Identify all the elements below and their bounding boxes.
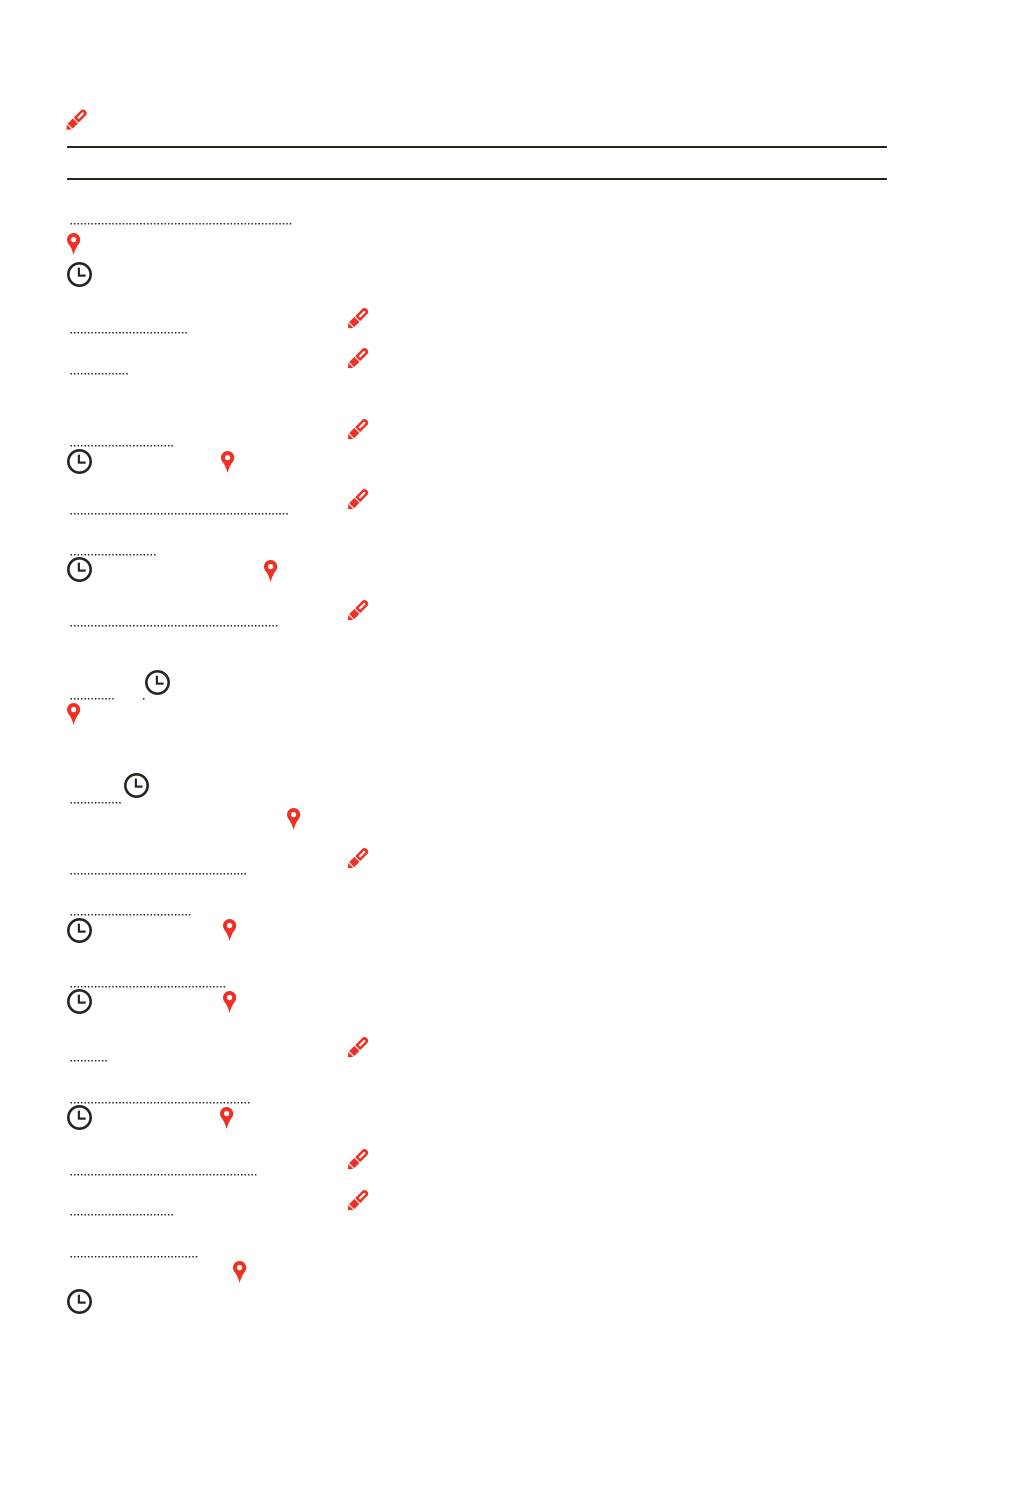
button[interactable]: Edit entry xyxy=(346,597,371,622)
button[interactable]: Edit entry xyxy=(346,1034,371,1059)
button[interactable]: Edit entry xyxy=(346,345,371,370)
button[interactable]: Itinerary entry xyxy=(67,662,887,732)
button[interactable]: Itinerary entry xyxy=(67,545,887,635)
button[interactable]: Itinerary entry xyxy=(67,1094,887,1224)
button[interactable]: Itinerary entry xyxy=(67,978,887,1074)
button[interactable]: Itinerary entry xyxy=(67,765,887,880)
button[interactable]: Itinerary entry xyxy=(67,300,887,386)
button[interactable]: Itinerary entry xyxy=(67,906,887,956)
button[interactable]: Itinerary entry xyxy=(67,412,887,524)
button[interactable]: Edit entry xyxy=(346,305,371,330)
button[interactable]: Edit entry xyxy=(346,416,371,441)
button[interactable]: Itinerary entry xyxy=(67,210,887,294)
button[interactable]: Edit entry xyxy=(346,486,371,511)
button[interactable]: Edit entry xyxy=(346,1187,371,1212)
button[interactable]: Compose xyxy=(64,106,89,131)
button[interactable]: Edit entry xyxy=(346,1146,371,1171)
button[interactable]: Edit entry xyxy=(346,845,371,870)
button[interactable]: Itinerary entry xyxy=(67,1248,887,1318)
